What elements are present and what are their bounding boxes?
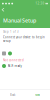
- staticText: Manual Setup: [3, 17, 36, 24]
- staticText: Next: [35, 93, 40, 97]
- button[interactable]: Back: [1, 7, 7, 13]
- staticText: Connect your device to begin setup: [3, 35, 45, 43]
- button[interactable]: Next: [25, 90, 50, 100]
- staticText: Not connected: [3, 58, 24, 62]
- staticText: 12:30: [36, 2, 45, 5]
- staticText: Wi-Fi ready: [7, 64, 21, 68]
- staticText: Step 1 of 3: [3, 30, 19, 33]
- staticText: Back: [10, 93, 15, 97]
- button[interactable]: Back: [0, 90, 25, 100]
